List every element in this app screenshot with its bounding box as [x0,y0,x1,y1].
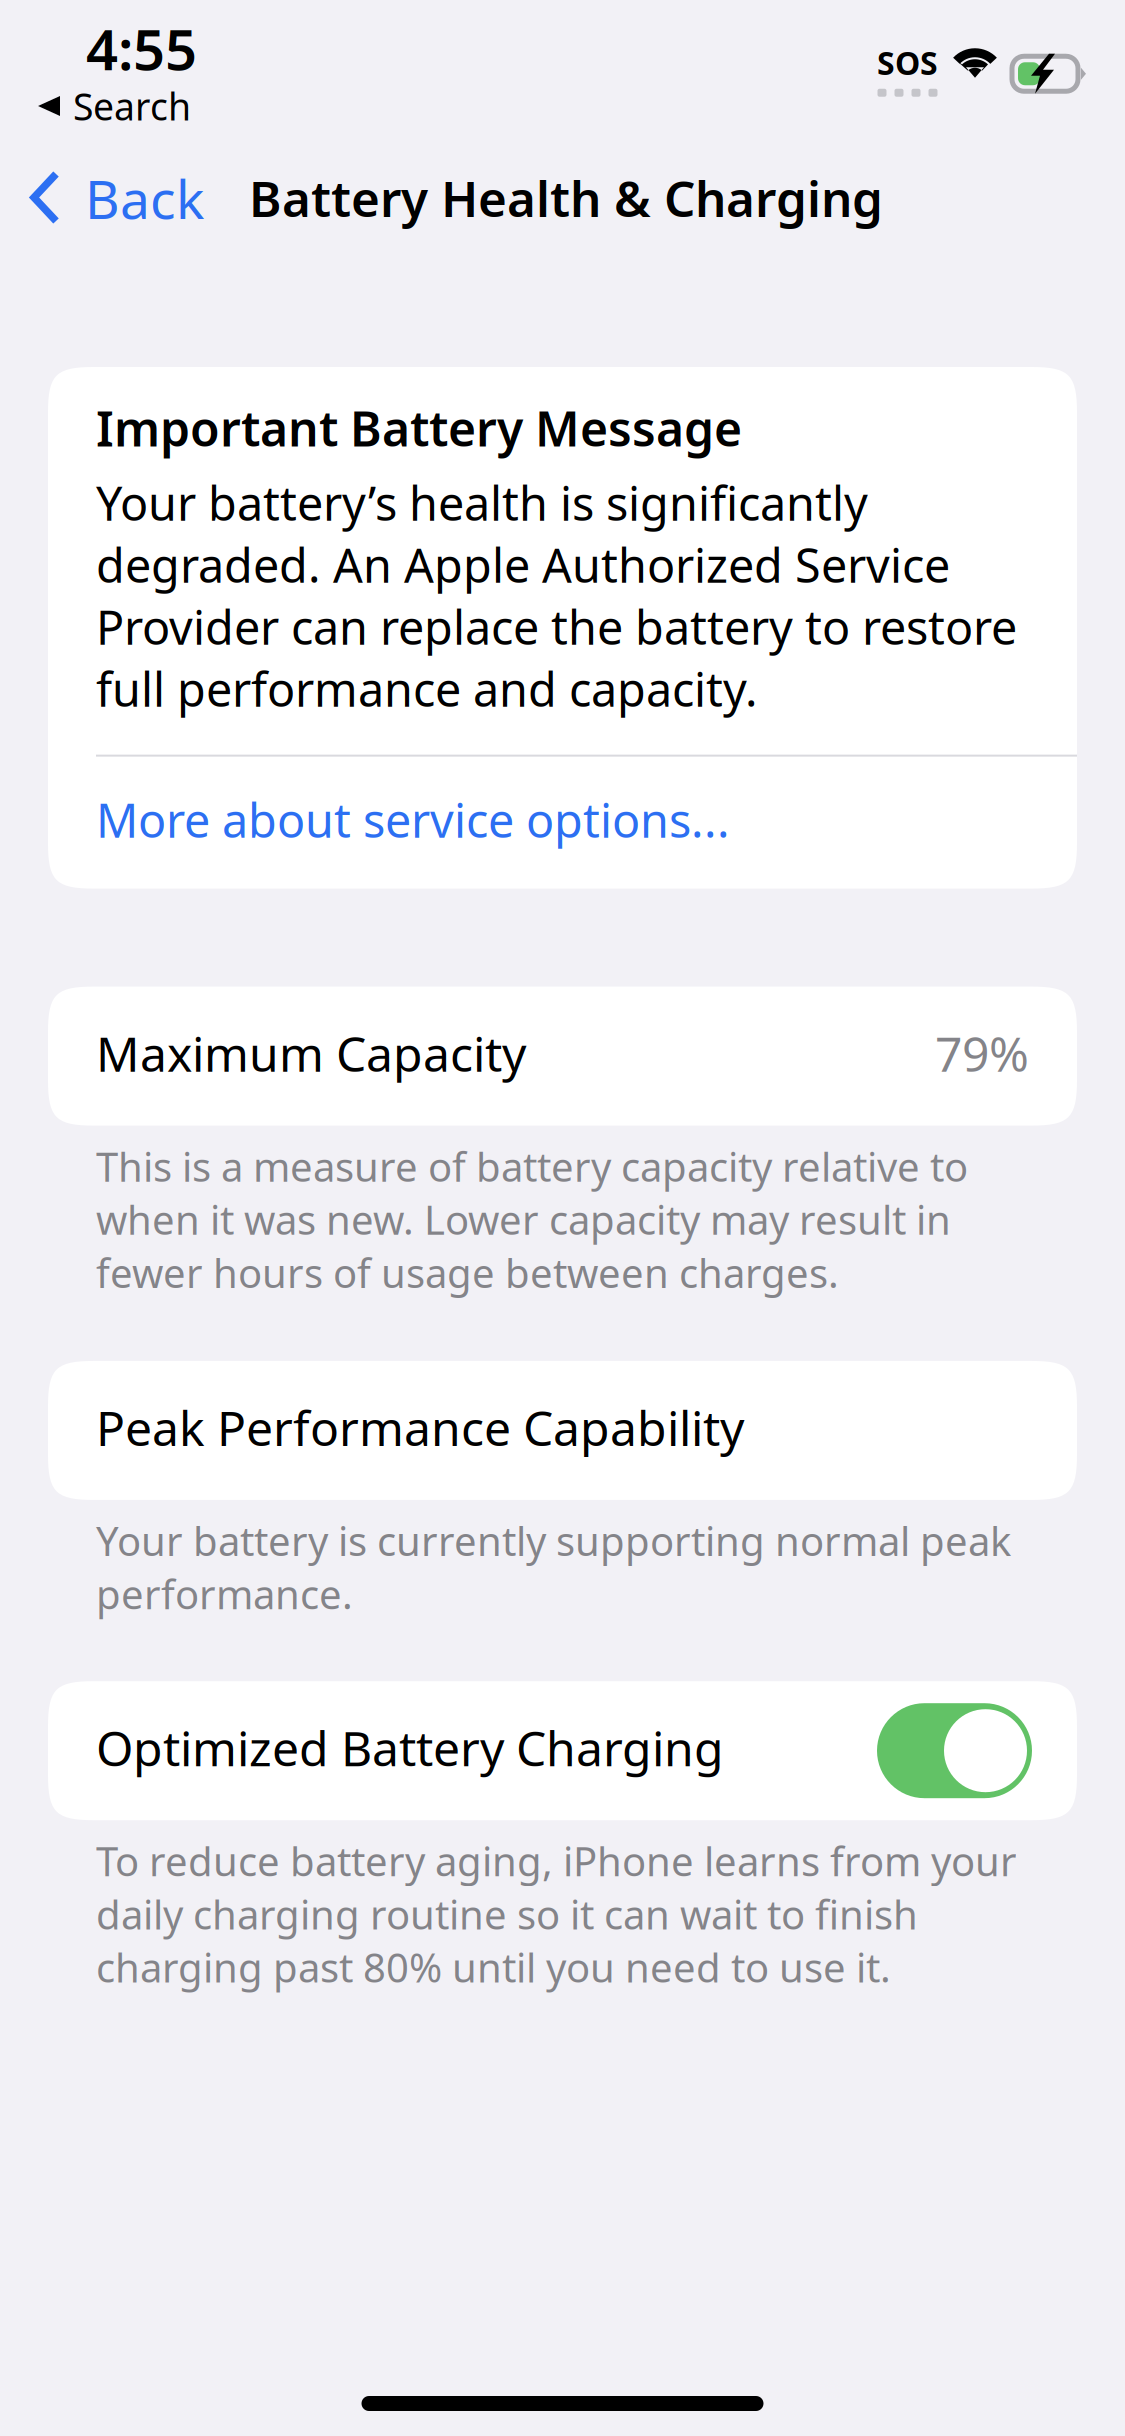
button[interactable]: Optimized Battery Charging [877,1703,1032,1798]
staticText: Important Battery Message [96,396,742,460]
staticText: Optimized Battery Charging [96,1716,724,1779]
staticText: SOS [877,41,938,84]
button[interactable]: Back [0,124,214,244]
staticText: Your battery is currently supporting nor… [96,1514,1011,1620]
staticText: To reduce battery aging, iPhone learns f… [96,1834,1017,1994]
staticText: Back [85,163,204,234]
staticText: 79% [935,1021,1029,1085]
staticText: Peak Performance Capability [96,1396,744,1459]
staticText: Your battery’s health is significantly d… [96,472,1017,720]
staticText: Battery Health & Charging [249,165,883,230]
button[interactable]: Peak Performance Capability [48,1361,1077,1500]
button[interactable]: Search [0,88,191,124]
staticText: More about service options... [96,789,730,851]
staticText: Search [73,81,191,131]
staticText: Maximum Capacity [96,1021,526,1085]
staticText: 4:55 [86,11,197,86]
staticText: This is a measure of battery capacity re… [96,1140,968,1299]
button[interactable]: More about service options... [48,757,1077,889]
